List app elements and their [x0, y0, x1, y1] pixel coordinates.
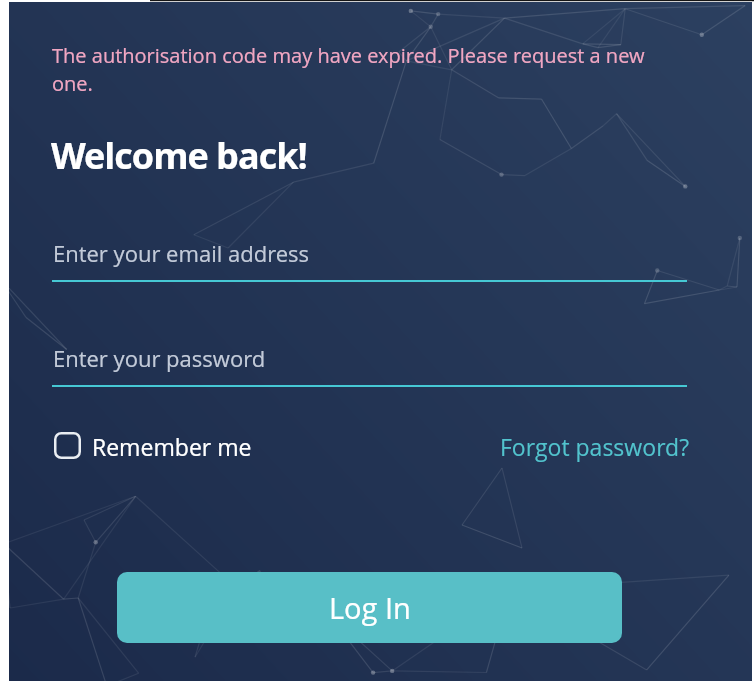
staticText: The authorisation code may have expired.… — [52, 42, 645, 97]
staticText: Welcome back! — [51, 131, 307, 180]
button[interactable]: Forgot password? — [500, 431, 690, 462]
button[interactable]: Enter your password — [52, 337, 687, 387]
button[interactable]: Enter your email address — [52, 232, 687, 282]
staticText: Enter your password — [53, 343, 266, 373]
staticText: Enter your email address — [53, 238, 310, 268]
staticText: Log In — [329, 588, 411, 627]
button[interactable] — [54, 432, 81, 459]
button[interactable]: Remember me — [92, 431, 252, 462]
button[interactable]: Log In — [117, 572, 622, 643]
